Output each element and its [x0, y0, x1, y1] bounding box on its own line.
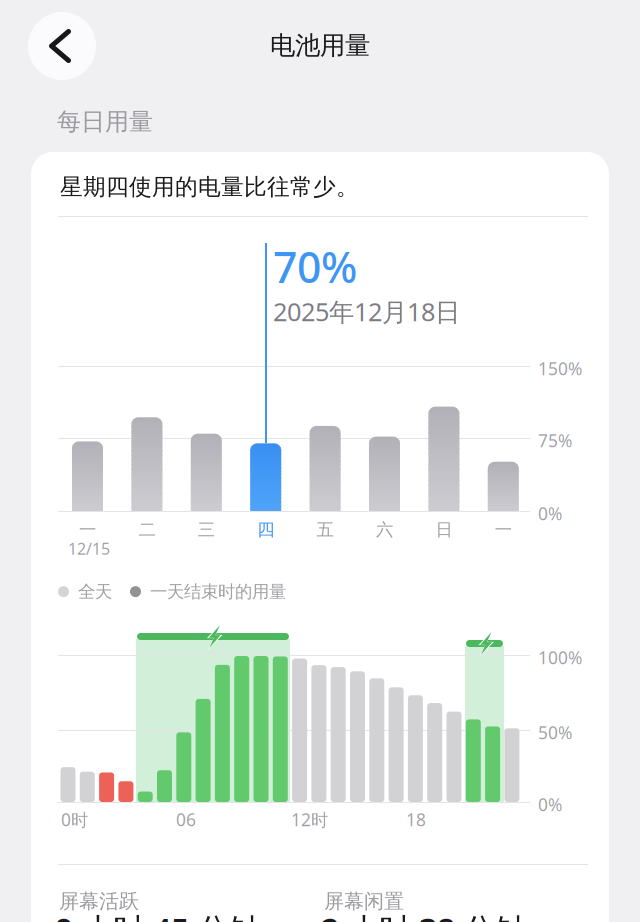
staticText: 18: [406, 808, 426, 831]
staticText: 五: [317, 519, 334, 540]
staticText: 星期四使用的电量比往常少。: [60, 173, 359, 201]
staticText: 全天: [78, 581, 112, 602]
staticText: 三: [198, 519, 215, 540]
staticText: 50%: [538, 721, 572, 744]
staticText: 二: [138, 519, 155, 540]
staticText: 四: [257, 519, 274, 540]
button[interactable]: 返回: [28, 12, 96, 80]
staticText: 100%: [538, 646, 582, 669]
staticText: 一: [79, 519, 96, 540]
staticText: 每日用量: [57, 107, 153, 136]
staticText: 2025年12月18日: [273, 295, 460, 328]
staticText: 12/15: [68, 538, 110, 559]
staticText: 0%: [538, 793, 562, 816]
staticText: 0%: [538, 502, 562, 525]
staticText: 06: [176, 808, 196, 831]
staticText: 一: [495, 519, 512, 540]
staticText: 75%: [538, 429, 572, 452]
staticText: 12时: [291, 808, 328, 831]
staticText: 2 小时 38 分钟: [321, 908, 527, 922]
staticText: 日: [435, 519, 452, 540]
staticText: 0时: [61, 808, 88, 831]
staticText: 9 小时 45 分钟: [55, 908, 261, 922]
staticText: 屏幕活跃: [59, 889, 139, 914]
staticText: 70%: [273, 238, 357, 295]
staticText: 一天结束时的用量: [150, 581, 286, 602]
staticText: 屏幕闲置: [324, 889, 404, 914]
staticText: 电池用量: [270, 30, 370, 61]
staticText: 150%: [538, 357, 582, 380]
staticText: 六: [376, 519, 393, 540]
